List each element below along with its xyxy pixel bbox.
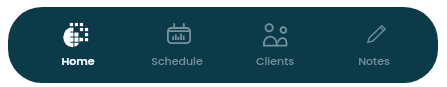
button[interactable]: Home — [34, 12, 122, 74]
button[interactable]: Schedule — [133, 12, 221, 74]
button[interactable]: Clients — [231, 12, 319, 74]
button[interactable]: Notes — [330, 12, 418, 74]
other: Notes — [367, 25, 386, 43]
staticText: Home — [34, 53, 122, 68]
staticText: Notes — [330, 53, 418, 68]
other: Home — [63, 21, 91, 48]
staticText: Schedule — [133, 53, 221, 68]
staticText: Clients — [231, 53, 319, 68]
other: Clients — [263, 23, 288, 46]
other: Schedule — [167, 23, 191, 44]
